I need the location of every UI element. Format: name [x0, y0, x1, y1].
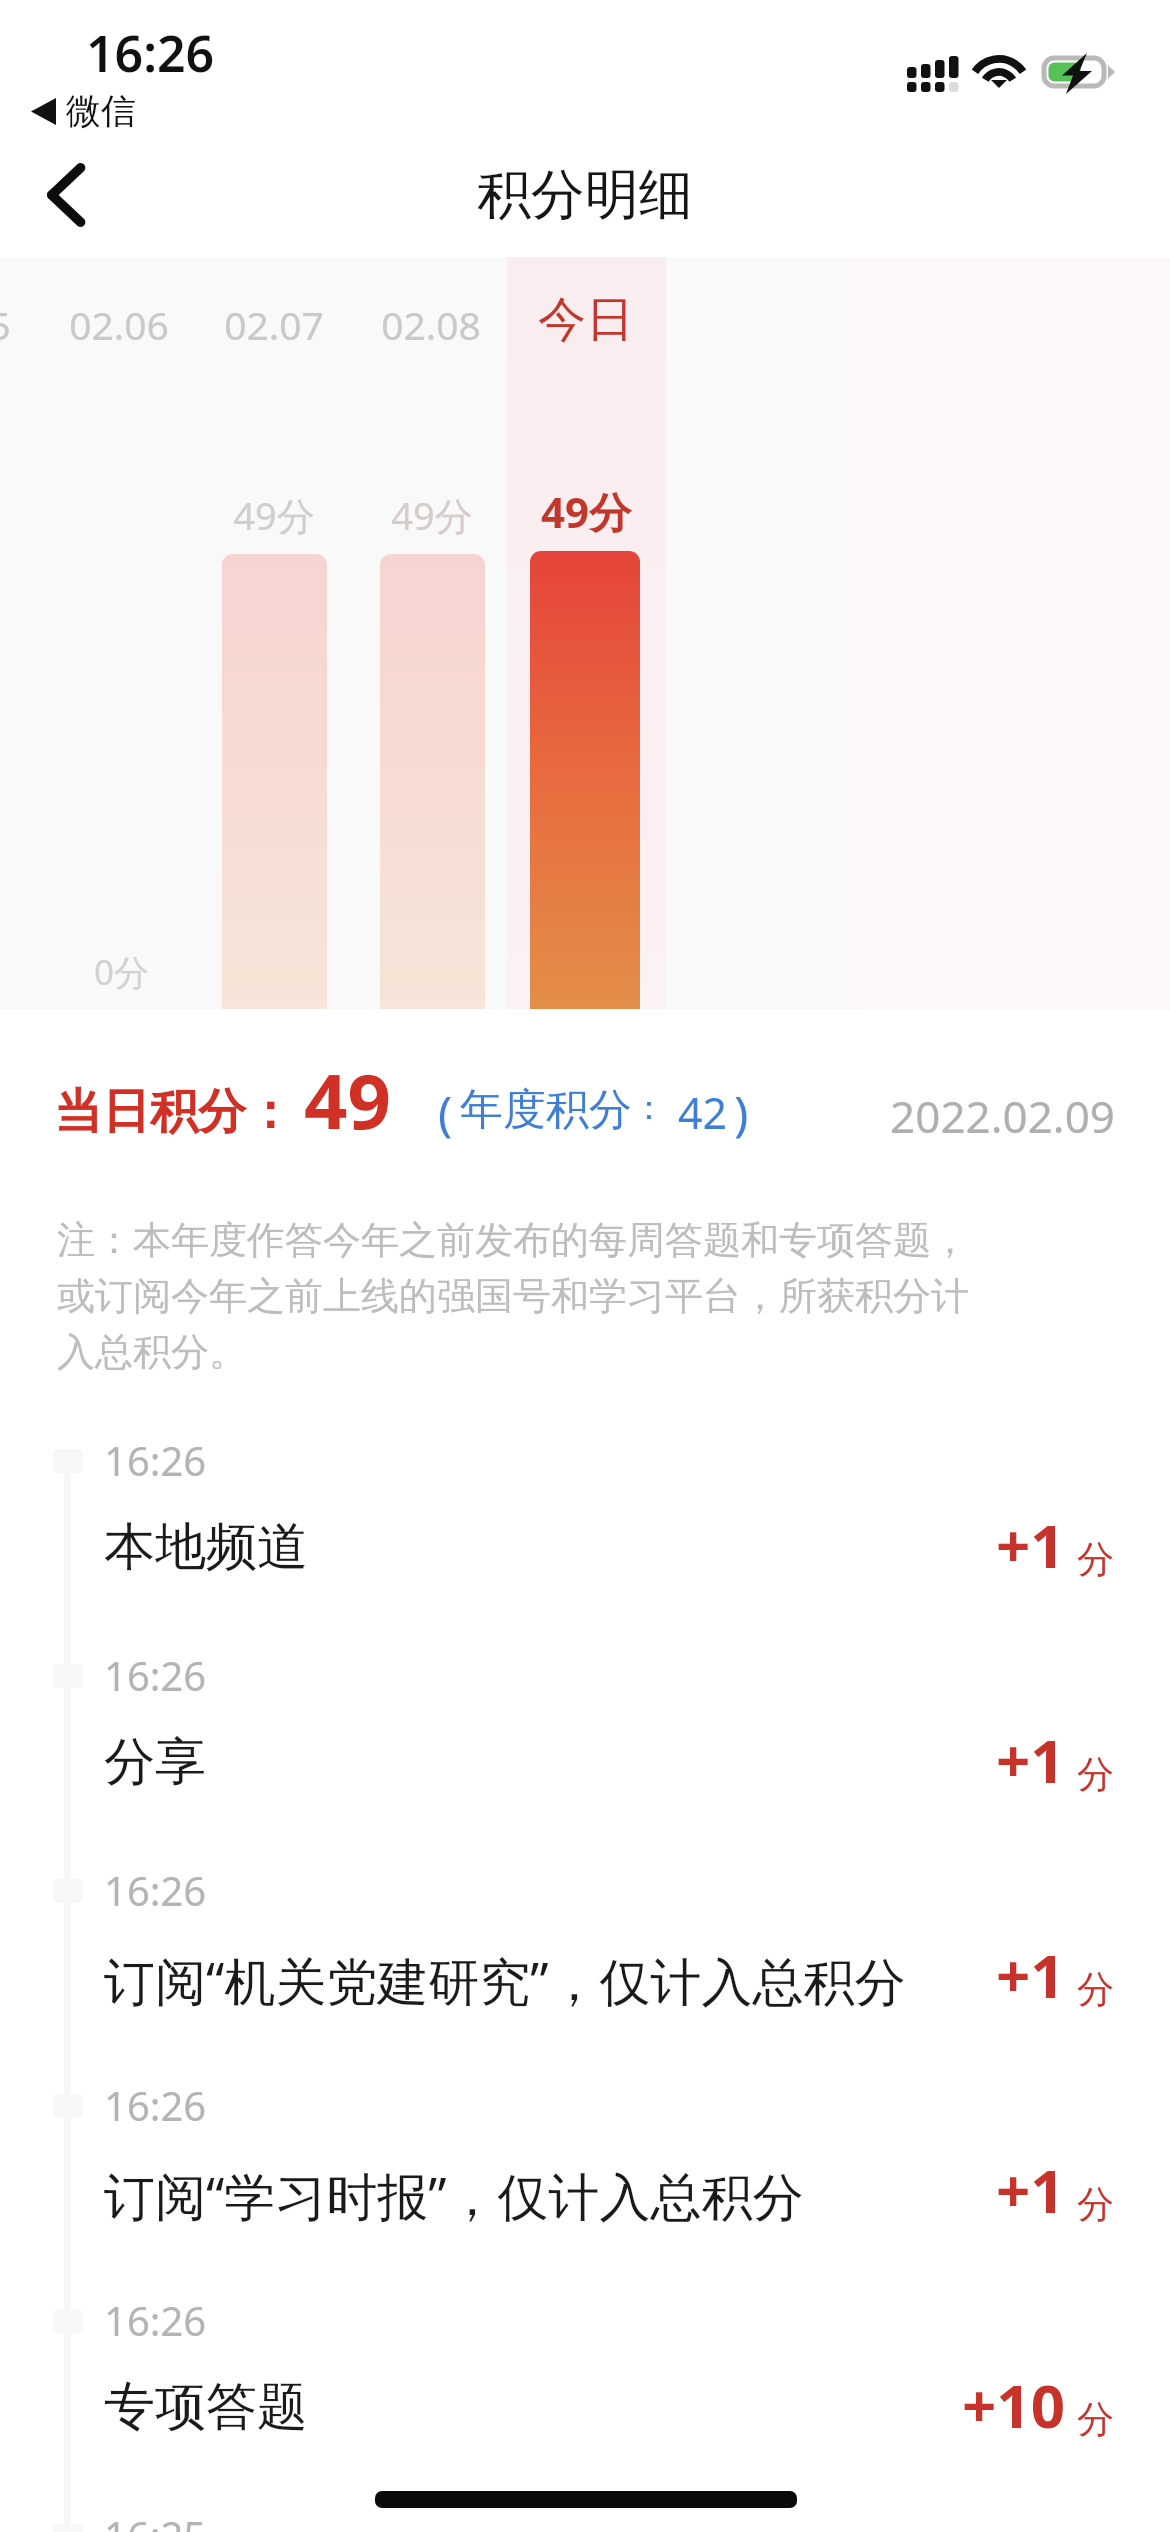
staticText: 2022.02.09 [860, 1086, 1115, 1146]
staticText: ) [734, 1080, 749, 1145]
staticText: 0分 [94, 948, 150, 996]
staticText: 分 [1077, 1751, 1114, 1798]
staticText: 分 [1077, 1966, 1114, 2013]
staticText: 订阅“学习时报”，仅计入总积分 [104, 2160, 804, 2230]
staticText: ： [632, 1086, 666, 1129]
staticText: 分 [1077, 1536, 1114, 1583]
button[interactable]: 16:26 [0, 2291, 1170, 2491]
staticText: 49分 [496, 483, 676, 540]
staticText: 积分明细 [477, 161, 693, 229]
staticText: 本地频道 [104, 1515, 308, 1579]
staticText: 02.06 [29, 298, 209, 351]
staticText: 02.05 [0, 298, 51, 351]
staticText: +1 [996, 1719, 1065, 1801]
staticText: 今日 [496, 290, 676, 350]
staticText: +1 [996, 1504, 1065, 1586]
staticText: 16:26 [104, 2293, 207, 2347]
button[interactable]: 16:26 [0, 1646, 1170, 1846]
button[interactable]: Back [8, 137, 124, 253]
staticText: ( [438, 1080, 453, 1145]
button[interactable]: 16:25 [0, 2506, 1170, 2532]
staticText: 分享 [104, 1730, 206, 1794]
staticText: 42 [678, 1083, 728, 1142]
staticText: 02.07 [184, 298, 364, 351]
staticText: 微信 [66, 89, 136, 133]
staticText: 分 [1077, 2396, 1114, 2443]
staticText: 16:26 [86, 19, 215, 87]
staticText: 16:26 [104, 1863, 207, 1917]
staticText: 49分 [184, 489, 364, 541]
staticText: 16:26 [104, 1433, 207, 1487]
staticText: +1 [996, 2149, 1065, 2231]
button[interactable]: 16:26 [0, 1431, 1170, 1631]
staticText: 49分 [342, 489, 522, 541]
button[interactable]: 16:26 [0, 1861, 1170, 2061]
staticText: 16:25 [104, 2508, 207, 2532]
staticText: 49 [304, 1048, 391, 1152]
staticText: 年度积分 [460, 1083, 632, 1137]
staticText: 16:26 [104, 2078, 207, 2132]
staticText: +1 [996, 1934, 1065, 2016]
button[interactable]: 16:26 [0, 2076, 1170, 2276]
staticText: 当日积分： [54, 1082, 294, 1142]
staticText: 订阅“机关党建研究”，仅计入总积分 [104, 1945, 906, 2015]
button[interactable]: 微信 [31, 89, 136, 133]
staticText: +10 [962, 2364, 1065, 2446]
staticText: 02.08 [341, 298, 521, 351]
staticText: 专项答题 [104, 2375, 308, 2439]
staticText: 注：本年度作答今年之前发布的每周答题和专项答题，或订阅今年之前上线的强国号和学习… [57, 1216, 997, 1376]
staticText: 16:26 [104, 1648, 207, 1702]
staticText: 分 [1077, 2181, 1114, 2228]
